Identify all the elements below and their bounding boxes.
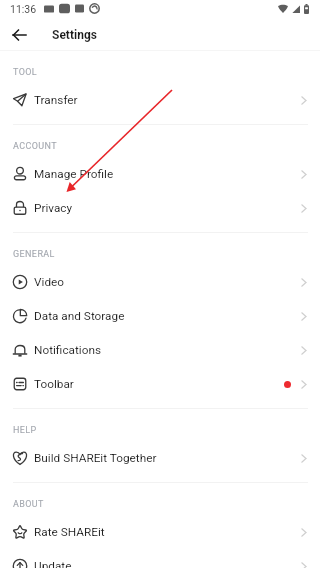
button[interactable]: Toolbar [0, 367, 320, 401]
staticText: TOOL [13, 67, 38, 78]
button[interactable]: Notifications [0, 333, 320, 367]
staticText: Build SHAREit Together [34, 451, 157, 465]
button[interactable]: Manage Profile [0, 157, 320, 191]
staticText: Rate SHAREit [34, 525, 105, 539]
staticText: ABOUT [13, 499, 44, 510]
button[interactable]: Video [0, 265, 320, 299]
staticText: Manage Profile [34, 167, 114, 181]
button[interactable]: Rate SHAREit [0, 515, 320, 549]
button[interactable]: Update [0, 549, 320, 568]
staticText: Video [34, 275, 65, 289]
staticText: HELP [13, 425, 37, 436]
button[interactable]: Data and Storage [0, 299, 320, 333]
button[interactable]: Build SHAREit Together [0, 441, 320, 475]
button[interactable]: Privacy [0, 191, 320, 225]
staticText: ACCOUNT [13, 141, 58, 152]
button[interactable]: Transfer [0, 83, 320, 117]
staticText: Transfer [34, 93, 78, 107]
staticText: Data and Storage [34, 309, 125, 323]
staticText: Privacy [34, 201, 73, 215]
staticText: Update [34, 559, 72, 568]
staticText: GENERAL [13, 249, 55, 260]
staticText: Toolbar [34, 377, 74, 391]
staticText: Settings [52, 28, 97, 42]
staticText: Notifications [34, 343, 102, 357]
button[interactable]: Back [6, 22, 32, 48]
staticText: 11:36 [10, 3, 37, 15]
